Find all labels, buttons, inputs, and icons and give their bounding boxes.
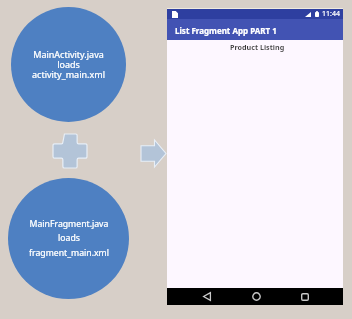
button[interactable]: Back bbox=[192, 288, 222, 305]
staticText: MainFragment.java loads fragment_main.xm… bbox=[29, 218, 109, 259]
button[interactable]: Home bbox=[241, 288, 271, 305]
button[interactable]: List Fragment App PART 1 bbox=[167, 19, 343, 40]
button[interactable]: Recents bbox=[290, 288, 320, 305]
staticText: MainActivity.java loads activity_main.xm… bbox=[32, 48, 105, 80]
button[interactable]: MainFragment.java loads fragment_main.xm… bbox=[8, 178, 129, 299]
staticText: Product Listing bbox=[230, 42, 285, 52]
staticText: 11:44 bbox=[322, 9, 340, 19]
button[interactable]: MainActivity.java loads activity_main.xm… bbox=[11, 7, 126, 122]
staticText: List Fragment App PART 1 bbox=[175, 25, 277, 36]
